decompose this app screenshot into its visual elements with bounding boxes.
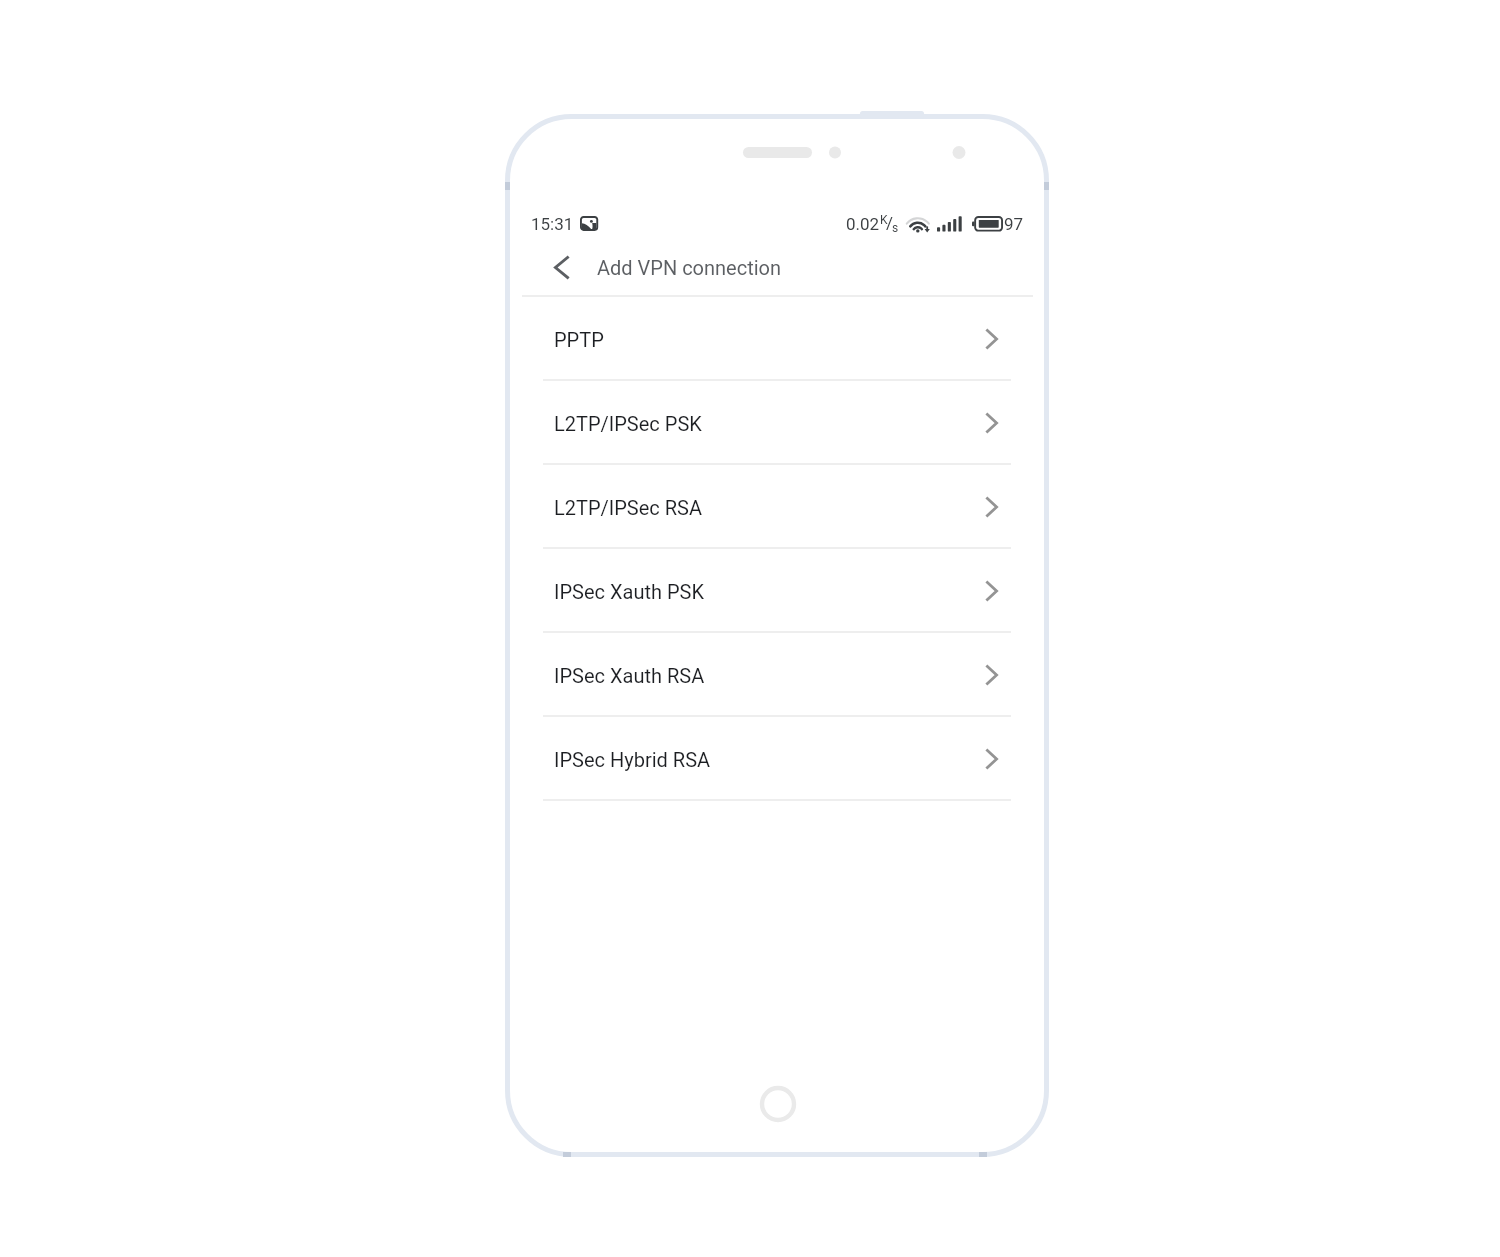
staticText: IPSec Xauth RSA xyxy=(554,664,705,687)
staticText: IPSec Xauth PSK xyxy=(554,580,704,603)
staticText: IPSec Hybrid RSA xyxy=(554,748,711,771)
staticText: 97 xyxy=(1004,214,1024,234)
staticText: Add VPN connection xyxy=(597,256,782,279)
staticText: K xyxy=(880,213,888,227)
staticText: 15:31 xyxy=(531,214,574,234)
staticText: s xyxy=(892,221,899,235)
button[interactable]: Back xyxy=(537,244,585,290)
button[interactable]: L2TP/IPSec PSK xyxy=(505,381,1049,465)
button[interactable]: L2TP/IPSec RSA xyxy=(505,465,1049,549)
staticText: L2TP/IPSec PSK xyxy=(554,412,702,435)
button[interactable]: IPSec Xauth PSK xyxy=(505,549,1049,633)
staticText: 0.02 xyxy=(846,214,880,234)
staticText: PPTP xyxy=(554,328,604,351)
staticText: / xyxy=(886,213,894,233)
button[interactable]: PPTP xyxy=(505,297,1049,381)
button[interactable]: IPSec Xauth RSA xyxy=(505,633,1049,717)
staticText: L2TP/IPSec RSA xyxy=(554,496,703,519)
button[interactable]: IPSec Hybrid RSA xyxy=(505,717,1049,801)
